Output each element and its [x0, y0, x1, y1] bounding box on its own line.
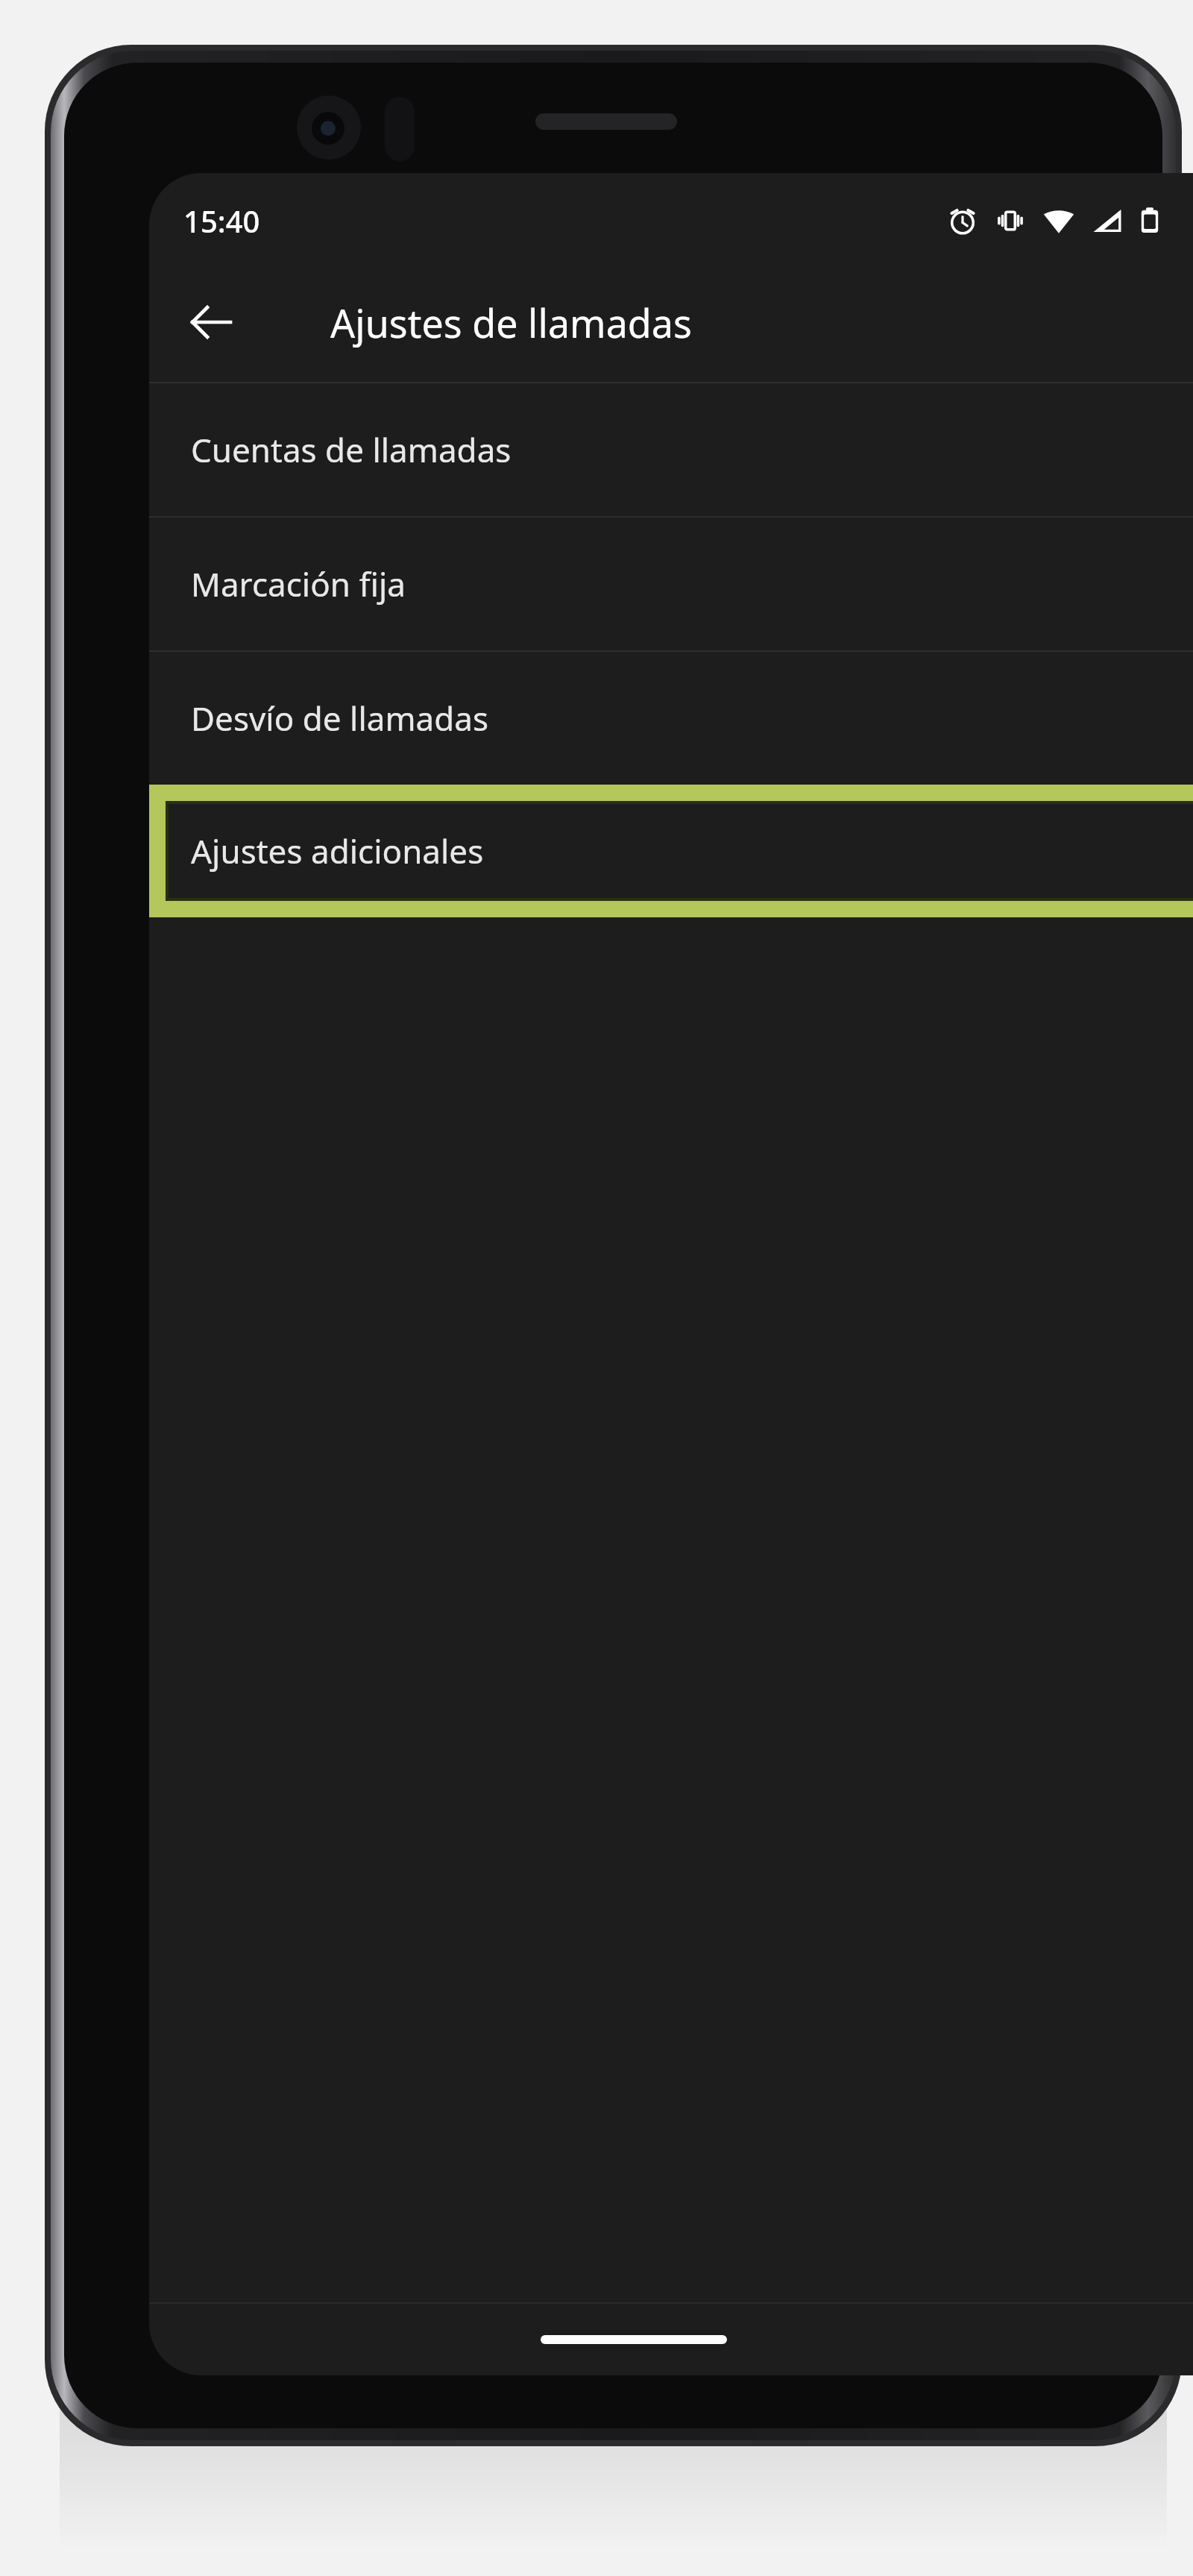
button[interactable]: Cuentas de llamadas: [149, 383, 1193, 516]
button[interactable]: Marcación fija: [149, 518, 1193, 650]
staticText: 15:40: [183, 201, 260, 241]
button[interactable]: Atrás: [170, 281, 252, 363]
staticText: Desvío de llamadas: [191, 696, 489, 741]
staticText: Ajustes de llamadas: [330, 296, 692, 349]
button[interactable]: Desvío de llamadas: [149, 652, 1193, 785]
staticText: Ajustes adicionales: [191, 829, 484, 873]
staticText: Marcación fija: [191, 562, 406, 606]
button[interactable]: Ajustes adicionales: [149, 785, 1193, 917]
staticText: Cuentas de llamadas: [191, 427, 511, 472]
